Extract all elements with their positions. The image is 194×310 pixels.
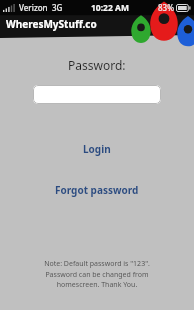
other: Signal strength [3,4,16,12]
staticText: 83% [158,2,174,13]
staticText: Forgot password [55,183,139,197]
staticText: 3G [52,2,63,13]
staticText: WheresMyStuff.co [6,17,97,31]
staticText: Note: Default password is "123". Passwor… [0,259,194,289]
button[interactable]: Forgot password [43,180,151,200]
button[interactable]: Password input field [33,85,161,104]
staticText: Password: [68,57,126,73]
staticText: 10:22 AM [91,2,129,14]
button[interactable]: Login [71,139,123,159]
other: Battery 83 percent [176,4,191,12]
staticText: Verizon [19,2,48,13]
staticText: Login [83,142,111,156]
